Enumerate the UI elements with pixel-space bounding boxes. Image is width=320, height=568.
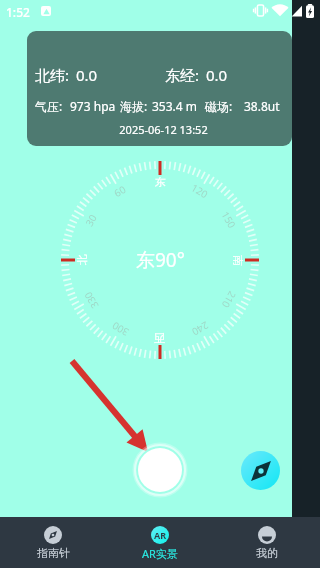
staticText: 0.0 bbox=[76, 65, 98, 85]
staticText: 东经: bbox=[165, 65, 200, 85]
staticText: 240 bbox=[189, 318, 211, 339]
staticText: 150 bbox=[218, 209, 239, 231]
staticText: 210 bbox=[218, 289, 239, 311]
staticText: 东90° bbox=[136, 247, 185, 273]
staticText: 西 bbox=[154, 331, 165, 345]
staticText: 指南针 bbox=[37, 546, 70, 560]
button[interactable]: Open compass bbox=[241, 451, 280, 490]
button[interactable]: Calibrate compass bbox=[138, 448, 182, 492]
button[interactable]: AR view bbox=[106, 517, 213, 568]
staticText: AR bbox=[154, 529, 167, 541]
staticText: 东 bbox=[155, 175, 166, 189]
staticText: 60 bbox=[111, 182, 129, 200]
staticText: AR实景 bbox=[142, 546, 178, 561]
button[interactable]: Compass bbox=[0, 517, 106, 568]
staticText: 30 bbox=[82, 211, 100, 229]
staticText: 我的 bbox=[256, 546, 278, 560]
staticText: 973 hpa bbox=[70, 98, 116, 114]
staticText: 38.8ut bbox=[244, 98, 280, 114]
staticText: 330 bbox=[80, 289, 101, 311]
staticText: 海拔: bbox=[120, 98, 148, 114]
staticText: 磁场: bbox=[205, 98, 233, 114]
staticText: 120 bbox=[189, 180, 211, 201]
staticText: 南 bbox=[231, 255, 245, 266]
staticText: 气压: bbox=[35, 98, 63, 114]
staticText: 300 bbox=[109, 318, 131, 339]
staticText: 1:52 bbox=[6, 4, 30, 20]
staticText: 北 bbox=[75, 254, 89, 265]
staticText: 353.4 m bbox=[152, 98, 198, 114]
staticText: 北纬: bbox=[35, 65, 70, 85]
button[interactable]: 北纬: bbox=[27, 31, 292, 146]
staticText: 0.0 bbox=[206, 65, 228, 85]
button[interactable]: Profile bbox=[213, 517, 320, 568]
staticText: 2025-06-12 13:52 bbox=[31, 122, 292, 137]
